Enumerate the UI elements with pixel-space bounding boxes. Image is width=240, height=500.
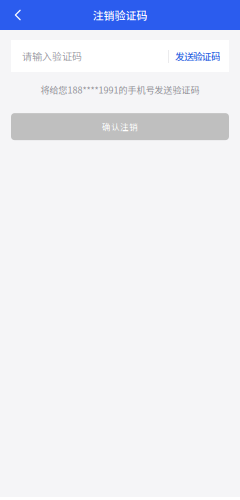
- staticText: 发送验证码: [175, 49, 220, 63]
- button[interactable]: Back: [0, 0, 36, 30]
- button[interactable]: 发送验证码: [169, 40, 229, 72]
- staticText: 将给您188****1991的手机号发送验证码: [40, 83, 199, 96]
- staticText: 确认注销: [102, 120, 138, 133]
- button[interactable]: 请输入验证码: [11, 40, 168, 72]
- staticText: 注销验证码: [92, 7, 147, 23]
- button[interactable]: 确认注销: [11, 113, 229, 140]
- staticText: 请输入验证码: [22, 49, 82, 63]
